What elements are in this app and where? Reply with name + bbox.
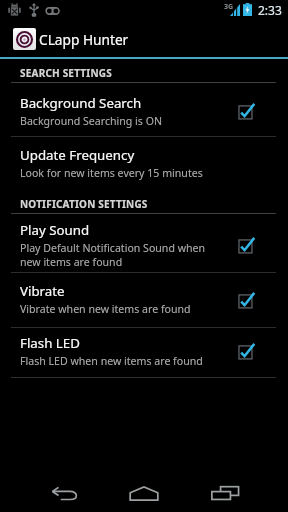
staticText: Update Frequency	[20, 146, 135, 164]
button[interactable]: Recent apps	[195, 471, 255, 512]
staticText: Play Default Notification Sound when	[20, 241, 206, 255]
button[interactable]: Play Sound	[0, 216, 288, 272]
button[interactable]: Flash LED	[0, 329, 288, 377]
staticText: Play Sound	[20, 221, 90, 239]
button[interactable]: Back	[34, 471, 94, 512]
staticText: 3G	[224, 2, 234, 12]
button[interactable]: Home	[114, 471, 174, 512]
staticText: Look for new items every 15 minutes	[20, 166, 203, 180]
staticText: Vibrate	[20, 282, 65, 300]
staticText: CLapp Hunter	[39, 30, 129, 49]
button[interactable]: Background Search	[0, 88, 288, 136]
staticText: 2:33	[258, 2, 282, 18]
staticText: SEARCH SETTINGS	[20, 66, 112, 80]
staticText: NOTIFICATION SETTINGS	[20, 197, 148, 211]
staticText: Background Search	[20, 94, 142, 112]
staticText: Background Searching is ON	[20, 114, 162, 128]
staticText: new items are found	[20, 255, 123, 269]
staticText: Flash LED	[20, 334, 80, 352]
staticText: Flash LED when new items are found	[20, 354, 203, 368]
button[interactable]: Update Frequency	[0, 138, 288, 190]
button[interactable]: Vibrate	[0, 274, 288, 327]
staticText: Vibrate when new items are found	[20, 302, 191, 316]
